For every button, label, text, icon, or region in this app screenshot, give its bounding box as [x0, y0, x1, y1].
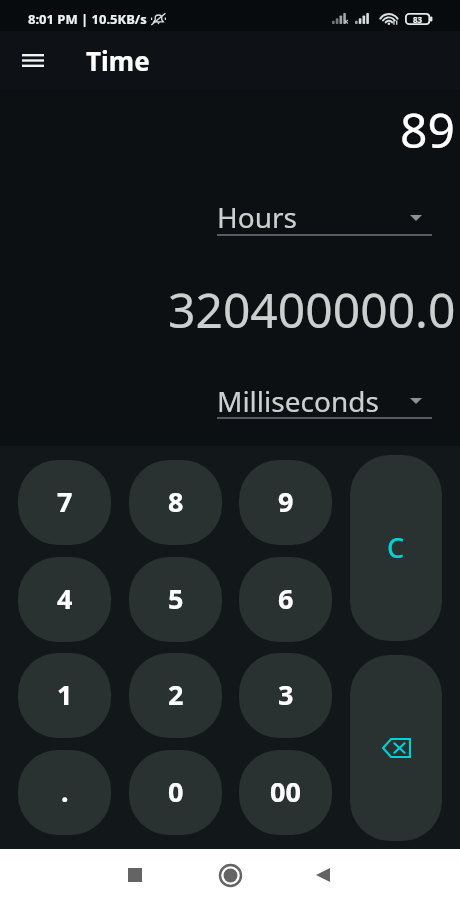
staticText: 6: [278, 580, 294, 617]
button[interactable]: Recent apps: [111, 851, 159, 899]
staticText: 00: [270, 773, 301, 810]
button[interactable]: Open navigation menu: [11, 38, 55, 82]
staticText: Hours: [217, 198, 297, 236]
staticText: 8:01 PM | 10.5KB/s: [28, 10, 147, 28]
staticText: 83: [413, 14, 423, 25]
button[interactable]: 00: [239, 750, 332, 835]
button[interactable]: Back: [299, 851, 347, 899]
button[interactable]: Hours: [217, 188, 432, 241]
button[interactable]: 3: [239, 653, 332, 738]
button[interactable]: 4: [18, 557, 111, 642]
staticText: 320400000.0: [168, 277, 456, 342]
button[interactable]: 1: [18, 653, 111, 738]
staticText: .: [61, 773, 69, 810]
button[interactable]: Backspace: [350, 655, 442, 841]
staticText: 89: [400, 97, 455, 162]
staticText: Milliseconds: [217, 382, 379, 420]
staticText: 0: [168, 773, 184, 810]
staticText: 1: [57, 676, 73, 713]
staticText: 7: [57, 483, 73, 520]
button[interactable]: 7: [18, 460, 111, 545]
staticText: 5: [168, 580, 184, 617]
button[interactable]: 6: [239, 557, 332, 642]
staticText: 4: [57, 580, 73, 617]
staticText: 3: [278, 676, 294, 713]
button[interactable]: .: [18, 750, 111, 835]
staticText: C: [387, 529, 405, 566]
button[interactable]: 5: [129, 557, 222, 642]
staticText: Time: [86, 43, 150, 78]
button[interactable]: Home: [206, 851, 254, 899]
button[interactable]: 2: [129, 653, 222, 738]
staticText: 8: [168, 483, 184, 520]
button[interactable]: 9: [239, 460, 332, 545]
staticText: 9: [278, 483, 294, 520]
staticText: 2: [168, 676, 184, 713]
button[interactable]: Milliseconds: [217, 372, 432, 423]
button[interactable]: 0: [129, 750, 222, 835]
button[interactable]: 8: [129, 460, 222, 545]
button[interactable]: Clear: [350, 455, 442, 641]
